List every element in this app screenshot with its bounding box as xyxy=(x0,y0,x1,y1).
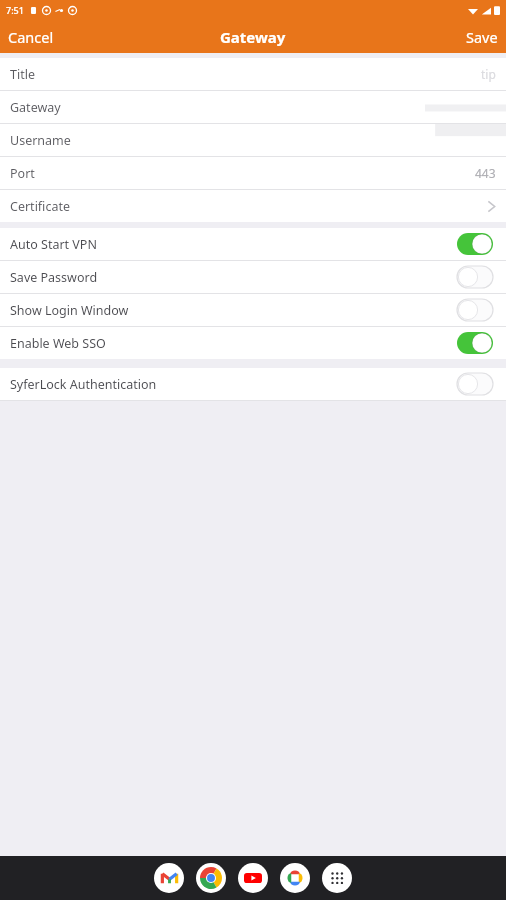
button[interactable]: Chrome xyxy=(196,863,226,893)
button[interactable]: Certificate xyxy=(0,190,506,222)
staticText: Auto Start VPN xyxy=(10,236,97,253)
staticText: Gateway xyxy=(220,27,286,47)
staticText: 7:51 xyxy=(6,4,24,16)
button[interactable]: Port xyxy=(0,157,506,189)
button[interactable]: Enable Web SSO xyxy=(0,327,506,359)
button[interactable]: Save xyxy=(456,21,506,53)
button[interactable]: Title xyxy=(0,58,506,90)
button[interactable]: Cancel xyxy=(0,21,64,53)
staticText: Save Password xyxy=(10,269,98,286)
button[interactable]: YouTube xyxy=(238,863,268,893)
other: Save Password xyxy=(457,266,493,288)
staticText: Enable Web SSO xyxy=(10,335,106,352)
staticText: Cancel xyxy=(8,27,54,47)
button[interactable]: Show Login Window xyxy=(0,294,506,326)
button[interactable]: SyferLock Authentication xyxy=(0,368,506,400)
staticText: tip xyxy=(481,66,496,82)
button[interactable]: Gmail xyxy=(154,863,184,893)
other: SyferLock Authentication xyxy=(457,373,493,395)
staticText: 443 xyxy=(475,165,496,181)
staticText: Save xyxy=(466,27,498,47)
staticText: Username xyxy=(10,132,71,149)
button[interactable]: All apps xyxy=(322,863,352,893)
staticText: SyferLock Authentication xyxy=(10,376,157,393)
button[interactable]: Gateway xyxy=(0,91,506,123)
staticText: Title xyxy=(10,66,35,83)
staticText: Gateway xyxy=(10,99,61,116)
staticText: Show Login Window xyxy=(10,302,129,319)
button[interactable]: Auto Start VPN xyxy=(0,228,506,260)
staticText: Certificate xyxy=(10,198,70,215)
other: Auto Start VPN xyxy=(457,233,493,255)
button[interactable]: Username xyxy=(0,124,506,156)
button[interactable]: Photos xyxy=(280,863,310,893)
other: Show Login Window xyxy=(457,299,493,321)
staticText: Port xyxy=(10,165,35,182)
button[interactable]: Save Password xyxy=(0,261,506,293)
other: Enable Web SSO xyxy=(457,332,493,354)
